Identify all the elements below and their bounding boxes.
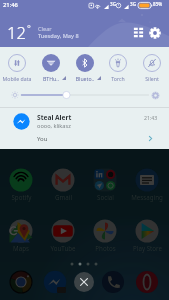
button[interactable]: Torch	[101, 54, 135, 82]
staticText: °	[27, 22, 31, 34]
button[interactable]: Messaging	[126, 168, 168, 201]
button[interactable]: Maps	[0, 219, 42, 252]
button[interactable]: Steal Alert	[0, 108, 169, 149]
button[interactable]: BTHu..	[34, 54, 68, 82]
staticText: Spotify	[11, 193, 32, 201]
staticText: You	[37, 135, 48, 143]
button[interactable]: YouTube	[42, 219, 84, 252]
staticText: Blueto..	[68, 75, 102, 82]
staticText: 85%	[153, 1, 163, 7]
button[interactable]: Expand notification	[145, 133, 156, 144]
staticText: BTHu..	[34, 75, 68, 82]
button[interactable]: Messenger	[41, 268, 69, 296]
button[interactable]: Gmail	[42, 168, 84, 201]
button[interactable]: Blueto..	[68, 54, 102, 82]
button[interactable]: Edit tiles	[132, 26, 145, 39]
staticText: YouTube	[50, 244, 76, 252]
staticText: Steal Alert	[37, 113, 72, 122]
staticText: 21:46	[3, 1, 18, 9]
button[interactable]: Close notification shade	[74, 272, 94, 292]
button[interactable]: Chrome	[7, 268, 35, 296]
button[interactable]: Settings	[148, 26, 162, 40]
button[interactable]: Brightness	[21, 89, 149, 101]
staticText: Social	[97, 193, 114, 201]
staticText: Photos	[95, 244, 116, 252]
staticText: oooo, klikasz	[37, 122, 71, 130]
button[interactable]: Spotify	[0, 168, 42, 201]
button[interactable]: Silent	[135, 54, 169, 82]
staticText: Silent	[135, 75, 169, 82]
button[interactable]: Play Store	[126, 219, 168, 252]
staticText: Play Store	[133, 244, 162, 252]
button[interactable]: Photos	[84, 219, 126, 252]
staticText: Gmail	[55, 193, 72, 201]
staticText: 3G	[110, 1, 116, 7]
staticText: Maps	[13, 244, 29, 252]
button[interactable]: Auto brightness	[151, 91, 160, 100]
staticText: 3G	[130, 1, 136, 7]
button[interactable]: Mobile data	[0, 54, 34, 82]
staticText: Mobile data	[0, 75, 34, 82]
staticText: Clear	[38, 25, 52, 33]
staticText: Messaging	[131, 193, 163, 201]
staticText: Tuesday, May 8	[38, 32, 79, 40]
button[interactable]: Phone	[99, 268, 127, 296]
staticText: Torch	[101, 75, 135, 82]
staticText: 12	[7, 21, 26, 43]
button[interactable]: Social	[84, 168, 126, 201]
button[interactable]: Opera	[133, 268, 161, 296]
staticText: 21:43	[144, 114, 158, 121]
